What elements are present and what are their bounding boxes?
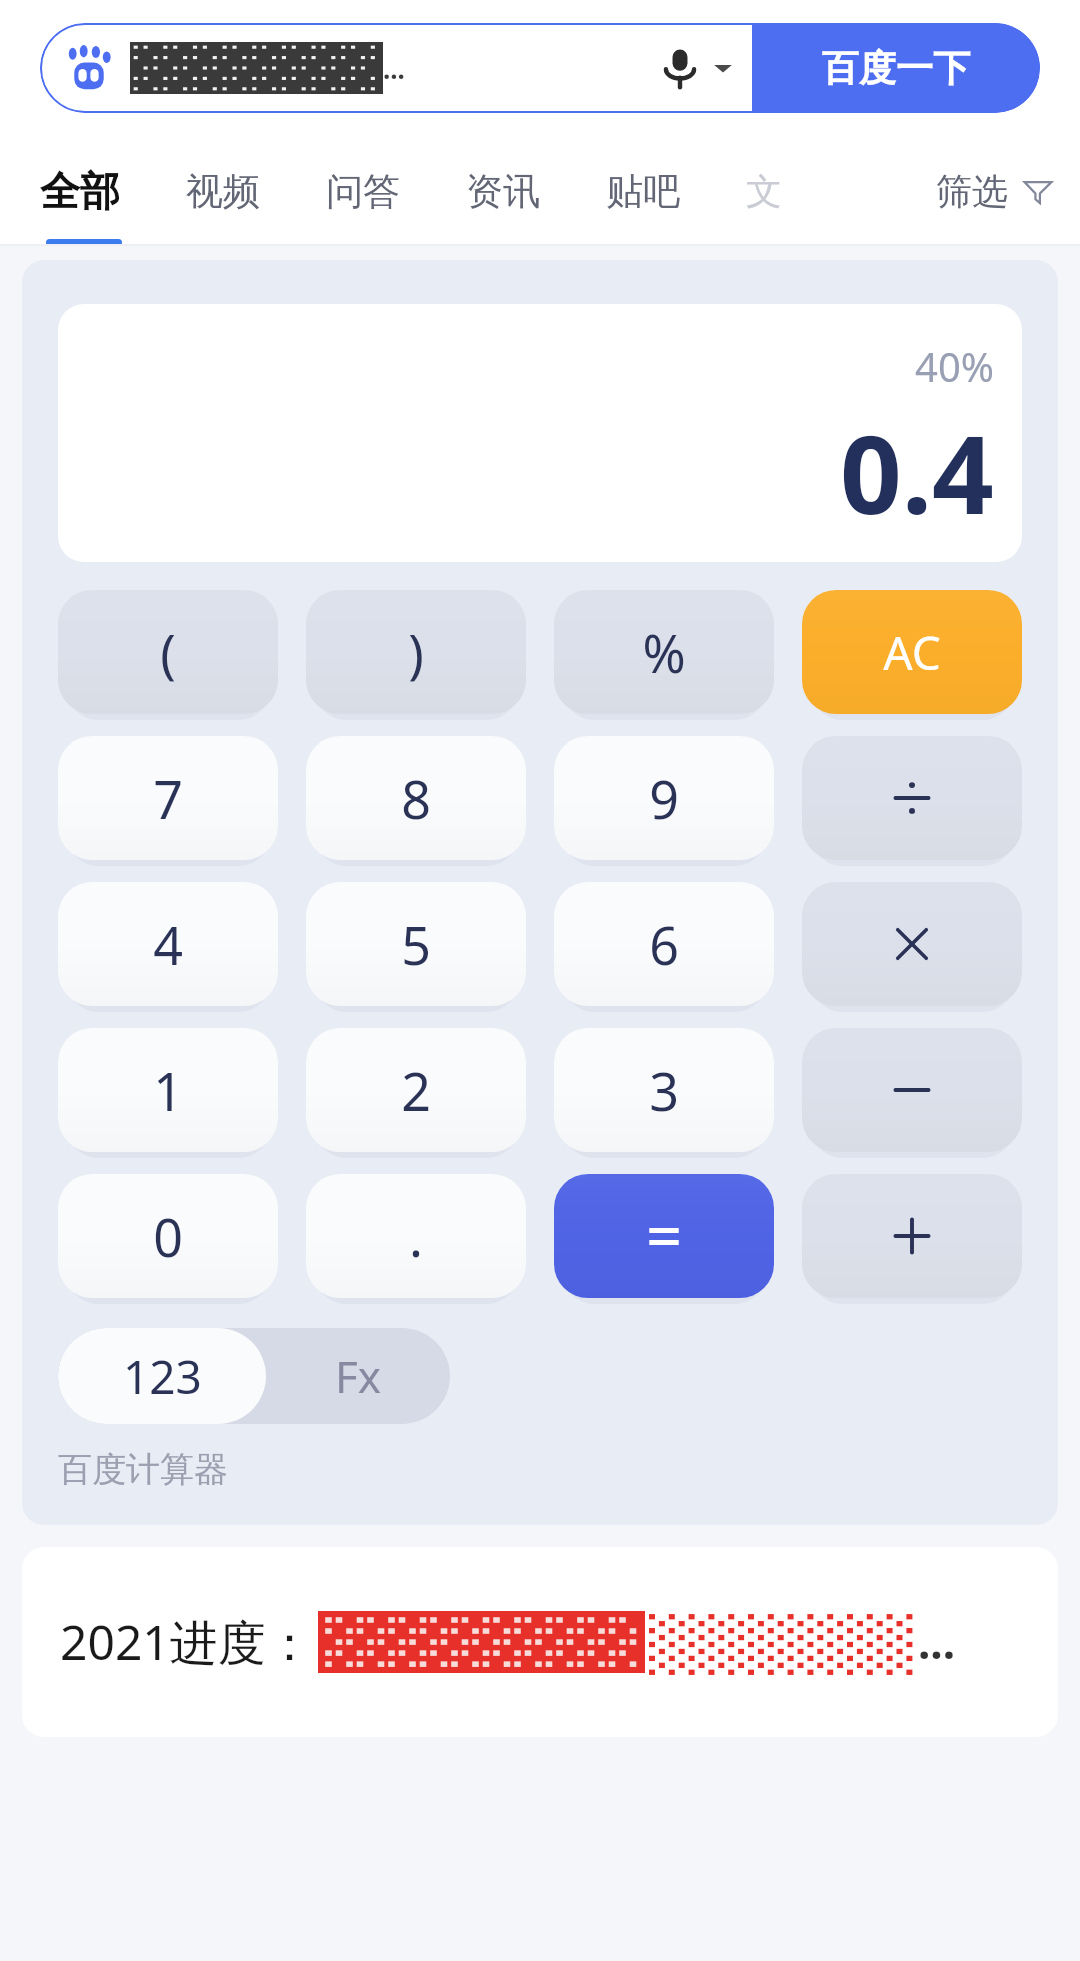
button[interactable]: 5 [306, 882, 526, 1006]
button[interactable]: 2021进度： [22, 1547, 1058, 1737]
button[interactable]: 123 [58, 1328, 450, 1424]
staticText: 5 [401, 909, 431, 980]
button[interactable]: 视频 [186, 136, 260, 246]
staticText: ) [408, 617, 424, 688]
staticText: 问答 [326, 168, 400, 215]
staticText: 123 [123, 1345, 202, 1408]
button[interactable] [802, 736, 1022, 860]
staticText: Fx [335, 1346, 382, 1406]
button[interactable] [802, 1174, 1022, 1298]
staticText: 全部 [40, 166, 120, 216]
button[interactable]: 4 [58, 882, 278, 1006]
staticText: . [409, 1201, 423, 1272]
button[interactable]: AC [802, 590, 1022, 714]
button[interactable]: 资讯 [466, 136, 540, 246]
staticText: 8 [401, 763, 431, 834]
staticText: ... [383, 51, 405, 86]
staticText: 9 [649, 763, 679, 834]
button[interactable]: 百度一下 [752, 23, 1040, 113]
staticText: 文 [746, 169, 782, 214]
staticText: ( [160, 617, 176, 688]
staticText: 4 [153, 909, 183, 980]
button[interactable]: 2 [306, 1028, 526, 1152]
button[interactable]: 3 [554, 1028, 774, 1152]
staticText: % [642, 617, 686, 688]
staticText: 筛选 [936, 169, 1008, 214]
staticText: 贴吧 [606, 168, 680, 215]
staticText: 7 [153, 763, 183, 834]
button[interactable] [802, 1028, 1022, 1152]
staticText: 视频 [186, 168, 260, 215]
button[interactable]: ( [58, 590, 278, 714]
button[interactable]: 8 [306, 736, 526, 860]
button[interactable]: 筛选 [936, 136, 1054, 246]
button[interactable] [802, 882, 1022, 1006]
button[interactable]: 6 [554, 882, 774, 1006]
staticText: 2021进度： [60, 1609, 314, 1675]
staticText: 百度计算器 [58, 1448, 228, 1491]
staticText: 0 [153, 1201, 183, 1272]
button[interactable]: 7 [58, 736, 278, 860]
staticText: 0.4 [840, 399, 994, 546]
button[interactable]: . [306, 1174, 526, 1298]
staticText: AC [883, 621, 941, 684]
button[interactable]: ... [40, 23, 752, 113]
button[interactable] [554, 1174, 774, 1298]
other: More [712, 57, 734, 79]
staticText: 2 [401, 1055, 431, 1126]
button[interactable]: 问答 [326, 136, 400, 246]
staticText: 百度一下 [822, 45, 970, 92]
button[interactable]: ) [306, 590, 526, 714]
button[interactable]: 1 [58, 1028, 278, 1152]
button[interactable]: % [554, 590, 774, 714]
button[interactable]: 0 [58, 1174, 278, 1298]
button[interactable]: 全部 [40, 136, 120, 246]
button[interactable]: 贴吧 [606, 136, 680, 246]
staticText: 6 [649, 909, 679, 980]
staticText: 资讯 [466, 168, 540, 215]
button[interactable]: 9 [554, 736, 774, 860]
staticText: 1 [153, 1055, 183, 1126]
staticText: 40% [915, 339, 994, 393]
other: Voice search [658, 46, 702, 90]
staticText: 3 [649, 1055, 679, 1126]
staticText: ... [918, 1612, 956, 1672]
